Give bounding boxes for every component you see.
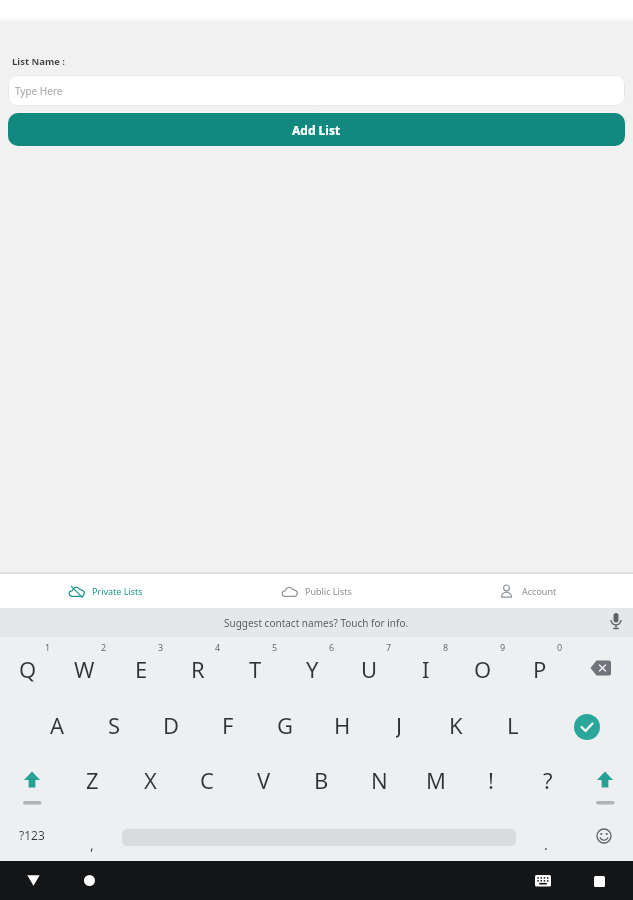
staticText: P [533, 654, 547, 682]
button[interactable]: U [345, 654, 393, 682]
button[interactable]: ? [524, 765, 572, 793]
staticText: N [371, 765, 388, 793]
button[interactable]: D [147, 710, 195, 738]
staticText: R [191, 654, 205, 682]
staticText: Z [86, 765, 99, 793]
button[interactable] [596, 771, 614, 807]
staticText: T [249, 654, 262, 682]
staticText: 9 [500, 641, 506, 653]
staticText: Suggest contact names? Touch for info. [224, 616, 409, 630]
button[interactable]: ! [467, 765, 515, 793]
staticText: 5 [272, 641, 278, 653]
button[interactable] [84, 875, 95, 886]
staticText: 2 [101, 641, 107, 653]
staticText: Q [19, 654, 37, 682]
staticText: E [135, 654, 148, 682]
button[interactable]: C [183, 765, 231, 793]
button[interactable]: Account [422, 574, 633, 608]
button[interactable]: F [204, 710, 252, 738]
staticText: 8 [443, 641, 449, 653]
button[interactable]: Private Lists [0, 574, 211, 608]
button[interactable]: W [60, 654, 108, 682]
button[interactable]: ?123 [8, 821, 56, 849]
staticText: 0 [557, 641, 563, 653]
button[interactable] [594, 876, 605, 887]
staticText: ?123 [19, 827, 45, 843]
staticText: O [474, 654, 492, 682]
button[interactable]: Type Here [8, 75, 625, 106]
staticText: B [314, 765, 329, 793]
button[interactable]: B [297, 765, 345, 793]
button[interactable]: T [231, 654, 279, 682]
button[interactable]: Z [68, 765, 116, 793]
button[interactable] [27, 875, 40, 886]
button[interactable]: P [516, 654, 564, 682]
staticText: S [108, 710, 121, 738]
button[interactable]: , [68, 830, 116, 858]
staticText: A [50, 710, 65, 738]
button[interactable] [574, 714, 600, 740]
button[interactable]: L [489, 710, 537, 738]
staticText: ? [543, 765, 553, 793]
button[interactable]: X [126, 765, 174, 793]
staticText: J [396, 710, 403, 738]
staticText: ! [488, 765, 494, 793]
button[interactable]: E [117, 654, 165, 682]
staticText: 3 [158, 641, 164, 653]
staticText: , [90, 835, 94, 854]
button[interactable]: G [261, 710, 309, 738]
button[interactable]: K [432, 710, 480, 738]
button[interactable]: A [33, 710, 81, 738]
staticText: M [426, 765, 446, 793]
staticText: 6 [329, 641, 335, 653]
button[interactable]: H [318, 710, 366, 738]
button[interactable]: J [375, 710, 423, 738]
staticText: G [277, 710, 294, 738]
button[interactable]: M [412, 765, 460, 793]
button[interactable]: V [240, 765, 288, 793]
staticText: 4 [215, 641, 221, 653]
staticText: V [257, 765, 271, 793]
staticText: I [422, 654, 430, 682]
button[interactable] [535, 875, 551, 887]
staticText: Account [522, 585, 557, 597]
staticText: L [507, 710, 519, 738]
button[interactable]: . [522, 830, 570, 858]
button[interactable] [23, 771, 41, 807]
staticText: U [361, 654, 378, 682]
staticText: Type Here [15, 84, 63, 98]
staticText: 7 [386, 641, 392, 653]
staticText: Add List [292, 122, 341, 138]
staticText: . [544, 835, 548, 854]
button[interactable]: Add List [8, 113, 625, 146]
button[interactable]: O [459, 654, 507, 682]
button[interactable]: R [174, 654, 222, 682]
button[interactable]: Y [288, 654, 336, 682]
button[interactable]: I [402, 654, 450, 682]
button[interactable]: N [355, 765, 403, 793]
staticText: Public Lists [305, 585, 352, 597]
staticText: 1 [45, 641, 51, 653]
button[interactable]: S [90, 710, 138, 738]
button[interactable]: Q [4, 654, 52, 682]
staticText: C [200, 765, 214, 793]
staticText: F [222, 710, 234, 738]
staticText: W [74, 654, 95, 682]
staticText: H [334, 710, 351, 738]
button[interactable]: Public Lists [211, 574, 422, 608]
staticText: Y [306, 654, 319, 682]
staticText: D [163, 710, 180, 738]
staticText: X [144, 765, 157, 793]
staticText: K [449, 710, 463, 738]
staticText: List Name : [12, 55, 66, 68]
staticText: Private Lists [92, 585, 143, 597]
